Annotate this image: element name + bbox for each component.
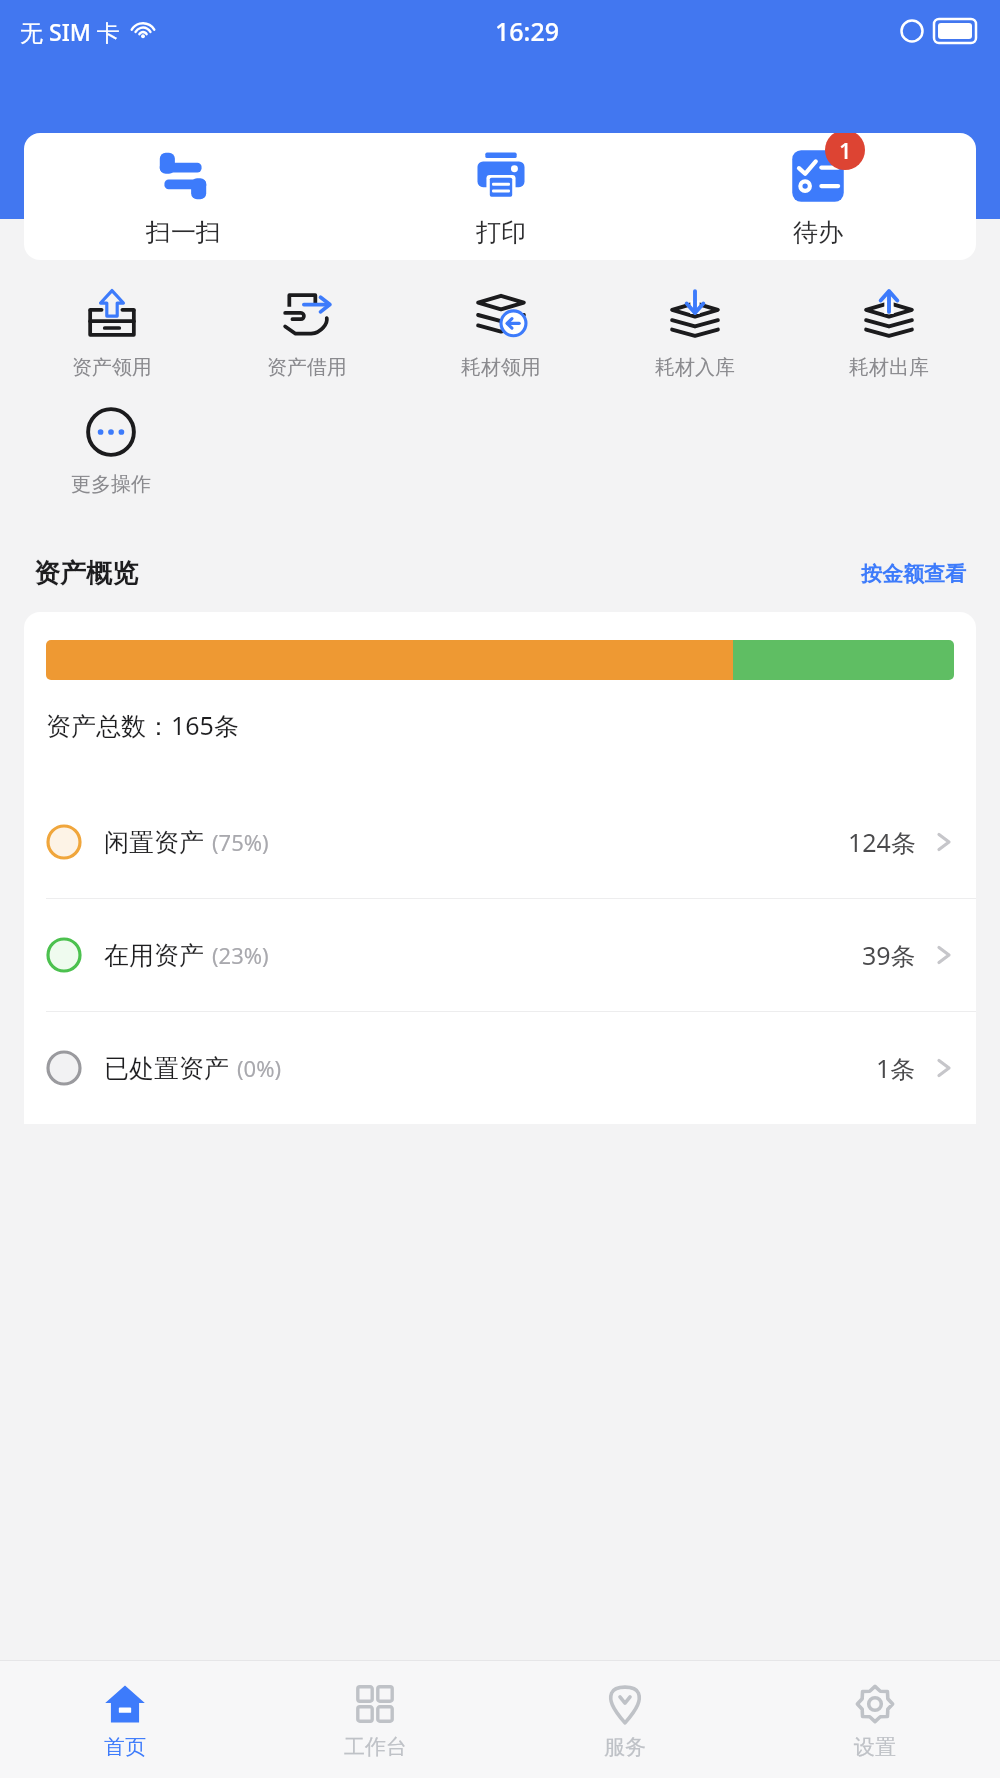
button[interactable]: 已处置资产 [24, 1012, 976, 1124]
staticText: (23%) [212, 940, 269, 970]
button[interactable]: 打印 [342, 133, 659, 260]
staticText: 1 [839, 135, 852, 165]
staticText: 1条 [876, 1051, 916, 1085]
staticText: 124条 [848, 825, 916, 859]
button[interactable]: 服务 [500, 1661, 750, 1778]
button[interactable]: 闲置资产 [24, 786, 976, 898]
button[interactable]: 工作台 [250, 1661, 500, 1778]
staticText: 已处置资产 [104, 1053, 229, 1084]
button[interactable]: 设置 [750, 1661, 1000, 1778]
button[interactable]: 耗材出库 [792, 275, 986, 392]
staticText: 打印 [476, 217, 526, 248]
button[interactable]: 耗材入库 [598, 275, 792, 392]
staticText: 扫一扫 [146, 217, 221, 248]
button[interactable]: 扫一扫 [24, 133, 342, 260]
staticText: 设置 [854, 1734, 896, 1760]
staticText: (75%) [212, 827, 269, 857]
staticText: 资产总数：165条 [46, 708, 239, 742]
button[interactable]: 首页 [0, 1661, 250, 1778]
staticText: 闲置资产 [104, 827, 204, 858]
staticText: 首页 [104, 1734, 146, 1760]
staticText: 39条 [862, 938, 916, 972]
staticText: 在用资产 [104, 940, 204, 971]
staticText: 更多操作 [71, 472, 151, 497]
staticText: 耗材出库 [849, 355, 929, 380]
button[interactable]: 按金额查看 [861, 561, 966, 587]
button[interactable]: 更多操作 [14, 392, 208, 509]
button[interactable]: 资产借用 [209, 275, 404, 392]
staticText: 16:29 [495, 14, 560, 48]
staticText: 耗材入库 [655, 355, 735, 380]
button[interactable]: 在用资产 [24, 899, 976, 1011]
staticText: 耗材领用 [461, 355, 541, 380]
staticText: 按金额查看 [861, 561, 966, 587]
button[interactable]: 资产领用 [14, 275, 209, 392]
staticText: (0%) [237, 1053, 282, 1083]
button[interactable]: 1 [659, 133, 976, 260]
button[interactable]: Notifications [918, 131, 964, 177]
staticText: 资产领用 [72, 355, 152, 380]
staticText: 待办 [793, 217, 843, 248]
button[interactable]: 耗材领用 [404, 275, 598, 392]
staticText: 服务 [604, 1734, 646, 1760]
staticText: 资产借用 [267, 355, 347, 380]
staticText: 无 SIM 卡 [20, 16, 120, 47]
staticText: 工作台 [344, 1734, 407, 1760]
staticText: 资产概览 [34, 557, 138, 590]
